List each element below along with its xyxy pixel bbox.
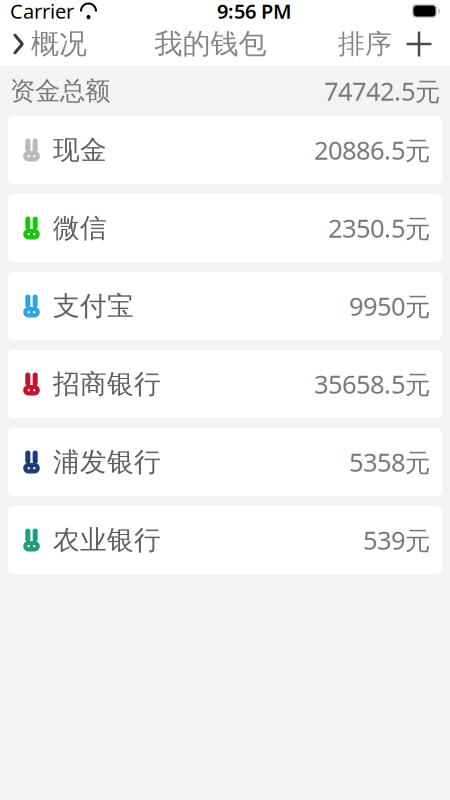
button[interactable]: Add account [396,25,442,63]
button[interactable]: 招商银行 [8,350,442,418]
staticText: 现金 [53,134,107,166]
staticText: 20886.5元 [314,133,430,167]
button[interactable]: 浦发银行 [8,428,442,496]
button[interactable]: 现金 [8,116,442,184]
staticText: 概况 [31,27,87,61]
staticText: 招商银行 [53,368,161,400]
staticText: 资金总额 [10,75,110,106]
staticText: 35658.5元 [314,367,430,401]
staticText: 9950元 [349,289,430,323]
staticText: 浦发银行 [53,446,161,478]
button[interactable]: 支付宝 [8,272,442,340]
button[interactable]: 排序 [334,22,396,66]
staticText: 农业银行 [53,524,161,556]
staticText: 支付宝 [53,290,134,322]
button[interactable]: 农业银行 [8,506,442,574]
staticText: 我的钱包 [154,27,266,61]
button[interactable]: 概况 [0,21,87,67]
staticText: 2350.5元 [328,211,430,245]
staticText: 5358元 [349,445,430,479]
staticText: 排序 [338,28,392,60]
staticText: 74742.5元 [324,74,440,108]
staticText: Carrier [10,0,74,24]
staticText: 微信 [53,212,107,244]
staticText: 539元 [363,523,430,557]
staticText: 9:56 PM [217,0,292,24]
button[interactable]: 微信 [8,194,442,262]
